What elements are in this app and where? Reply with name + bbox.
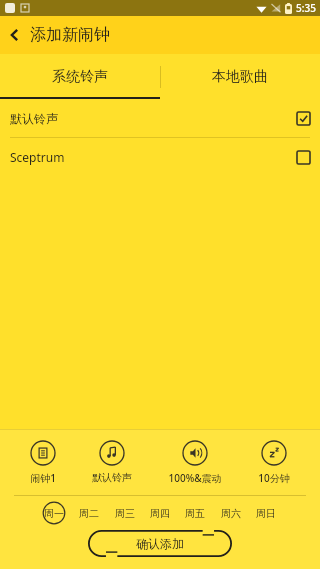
staticText: 100%&震动 bbox=[168, 471, 222, 485]
staticText: 闹钟1 bbox=[30, 471, 56, 485]
button[interactable]: 本地歌曲 bbox=[160, 54, 320, 99]
staticText: 周四 bbox=[150, 507, 170, 520]
staticText: 周三 bbox=[115, 507, 135, 520]
staticText: 系统铃声 bbox=[52, 68, 108, 86]
button[interactable]: 周三 bbox=[113, 501, 137, 525]
staticText: 默认铃声 bbox=[92, 471, 132, 484]
staticText: 周六 bbox=[221, 507, 241, 520]
button[interactable]: 100%&震动 bbox=[162, 438, 228, 487]
staticText: 周日 bbox=[256, 507, 276, 520]
staticText: Sceptrum bbox=[10, 149, 297, 165]
button[interactable]: 10分钟 bbox=[252, 438, 296, 487]
staticText: 周一 bbox=[44, 507, 64, 520]
button[interactable]: 周六 bbox=[219, 501, 243, 525]
button[interactable]: 周五 bbox=[183, 501, 207, 525]
button[interactable]: 默认铃声 bbox=[86, 438, 138, 486]
button[interactable]: 周一 bbox=[42, 501, 66, 525]
staticText: 10分钟 bbox=[258, 471, 290, 485]
button[interactable]: Sceptrum bbox=[0, 138, 320, 176]
staticText: 本地歌曲 bbox=[212, 68, 268, 86]
button[interactable]: Back bbox=[0, 20, 30, 50]
button[interactable]: 系统铃声 bbox=[0, 54, 160, 99]
staticText: 添加新闹钟 bbox=[30, 25, 110, 45]
button[interactable]: 周日 bbox=[254, 501, 278, 525]
button[interactable]: 确认添加 bbox=[88, 530, 232, 557]
button[interactable]: 闹钟1 bbox=[24, 438, 62, 487]
button[interactable]: 周二 bbox=[77, 501, 101, 525]
staticText: 周五 bbox=[185, 507, 205, 520]
button[interactable]: 周四 bbox=[148, 501, 172, 525]
staticText: 默认铃声 bbox=[10, 111, 297, 126]
staticText: 周二 bbox=[79, 507, 99, 520]
button[interactable]: 默认铃声 bbox=[0, 99, 320, 137]
staticText: 确认添加 bbox=[136, 536, 184, 551]
staticText: 5:35 bbox=[296, 1, 316, 15]
